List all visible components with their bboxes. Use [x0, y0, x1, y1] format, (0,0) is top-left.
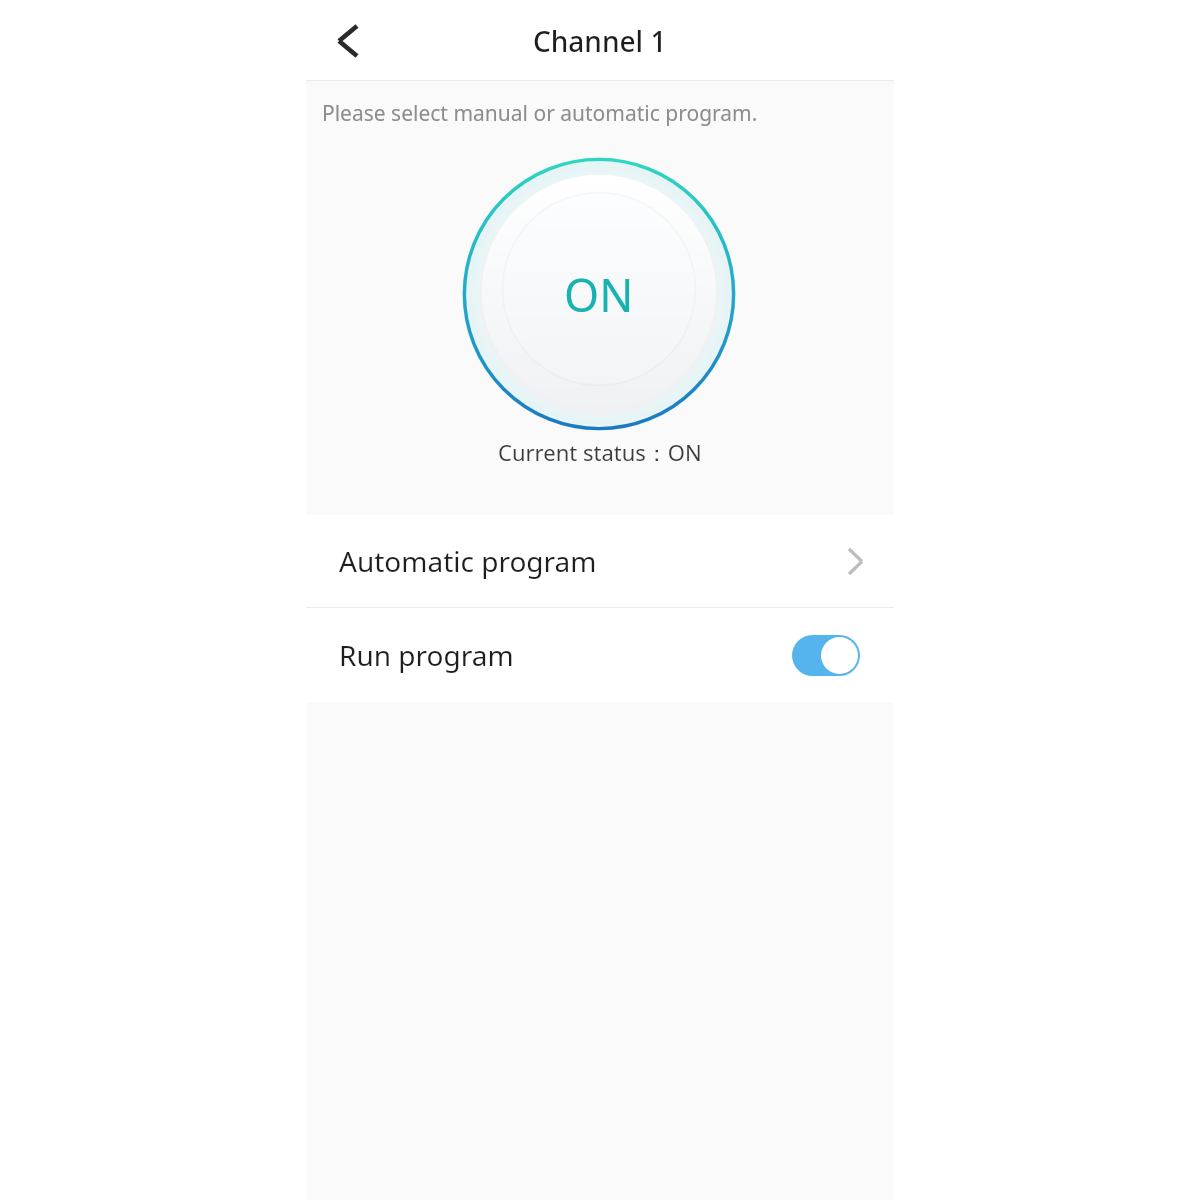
staticText: Current status：ON: [498, 437, 702, 467]
button[interactable]: Run program, on: [792, 635, 860, 676]
staticText: ON: [564, 264, 634, 325]
button[interactable]: Back: [320, 13, 376, 69]
staticText: Channel 1: [533, 22, 667, 60]
staticText: Please select manual or automatic progra…: [322, 99, 758, 128]
button[interactable]: ON: [462, 157, 736, 431]
button[interactable]: Run program: [306, 608, 894, 702]
staticText: Automatic program: [339, 542, 597, 580]
button[interactable]: Automatic program: [306, 515, 894, 607]
staticText: Run program: [339, 636, 514, 674]
